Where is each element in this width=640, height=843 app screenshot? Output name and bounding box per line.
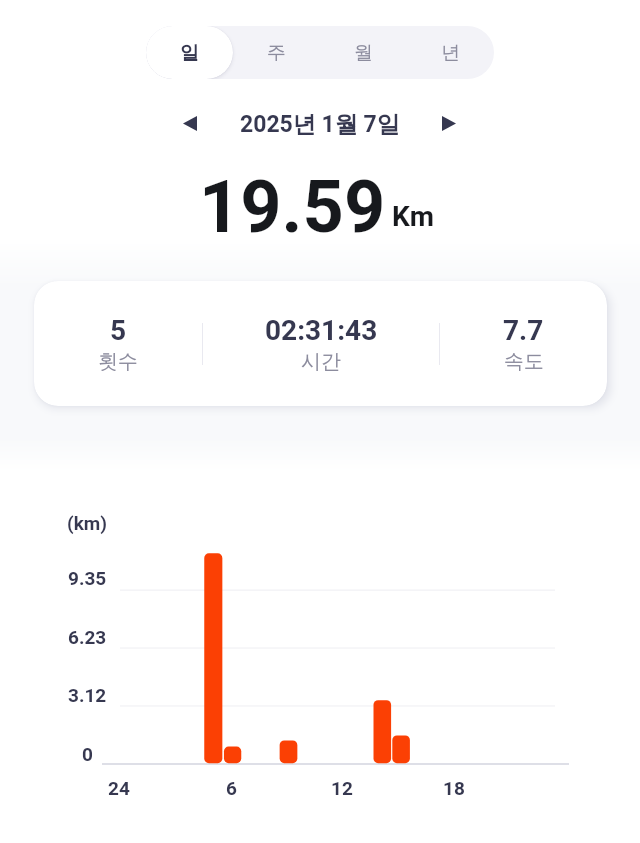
button[interactable]: 년 [407, 26, 494, 79]
button[interactable]: 7.7 [440, 281, 607, 406]
button[interactable]: 5 [34, 281, 202, 406]
staticText: 년 [441, 41, 460, 65]
staticText: 5 [110, 314, 127, 347]
staticText: Km [392, 200, 435, 233]
staticText: 3.12 [68, 684, 107, 706]
staticText: 12 [331, 777, 353, 799]
staticText: 월 [354, 41, 373, 65]
button[interactable]: 일 [146, 26, 233, 79]
staticText: 시간 [301, 349, 341, 374]
staticText: 19.59 [199, 165, 386, 249]
staticText: 7.7 [503, 314, 544, 347]
staticText: (km) [67, 512, 107, 534]
staticText: 0 [82, 743, 93, 765]
staticText: 주 [267, 41, 286, 65]
button[interactable]: 월 [320, 26, 407, 79]
staticText: 18 [443, 777, 465, 799]
staticText: 02:31:43 [265, 314, 378, 347]
staticText: 6.23 [68, 626, 107, 648]
staticText: 6 [226, 777, 237, 799]
staticText: 횟수 [98, 349, 138, 374]
staticText: 9.35 [68, 567, 107, 589]
button[interactable]: 주 [233, 26, 320, 79]
staticText: 일 [180, 41, 199, 65]
button[interactable]: Previous day [168, 101, 212, 145]
button[interactable]: Next day [427, 101, 471, 145]
staticText: 속도 [504, 349, 544, 374]
button[interactable]: 02:31:43 [203, 281, 439, 406]
staticText: 24 [108, 777, 130, 799]
staticText: 2025년 1월 7일 [240, 110, 400, 139]
